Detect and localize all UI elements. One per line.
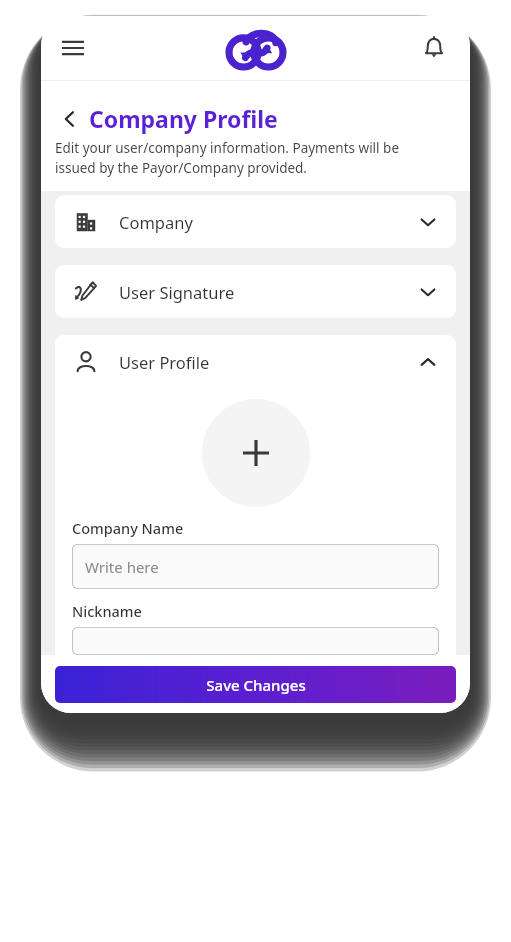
button[interactable]: Write here: [72, 544, 439, 589]
button[interactable]: Back: [55, 104, 85, 134]
button[interactable]: Add photo: [202, 399, 310, 507]
button[interactable]: Company: [55, 195, 456, 248]
button[interactable]: User Signature: [55, 265, 456, 318]
staticText: Company Profile: [89, 103, 278, 134]
staticText: Nickname: [72, 601, 142, 621]
button[interactable]: Save Changes: [55, 666, 456, 703]
staticText: Company: [119, 211, 193, 233]
staticText: Write here: [85, 557, 159, 577]
button[interactable]: User Profile: [55, 335, 456, 388]
staticText: User Profile: [119, 351, 210, 373]
staticText: User Signature: [119, 281, 235, 303]
staticText: Edit your user/company information. Paym…: [55, 139, 400, 177]
staticText: Company Name: [72, 518, 184, 538]
staticText: Save Changes: [206, 675, 306, 695]
button[interactable]: Menu: [53, 28, 93, 68]
button[interactable]: [72, 627, 439, 655]
button[interactable]: Notifications: [414, 28, 454, 68]
